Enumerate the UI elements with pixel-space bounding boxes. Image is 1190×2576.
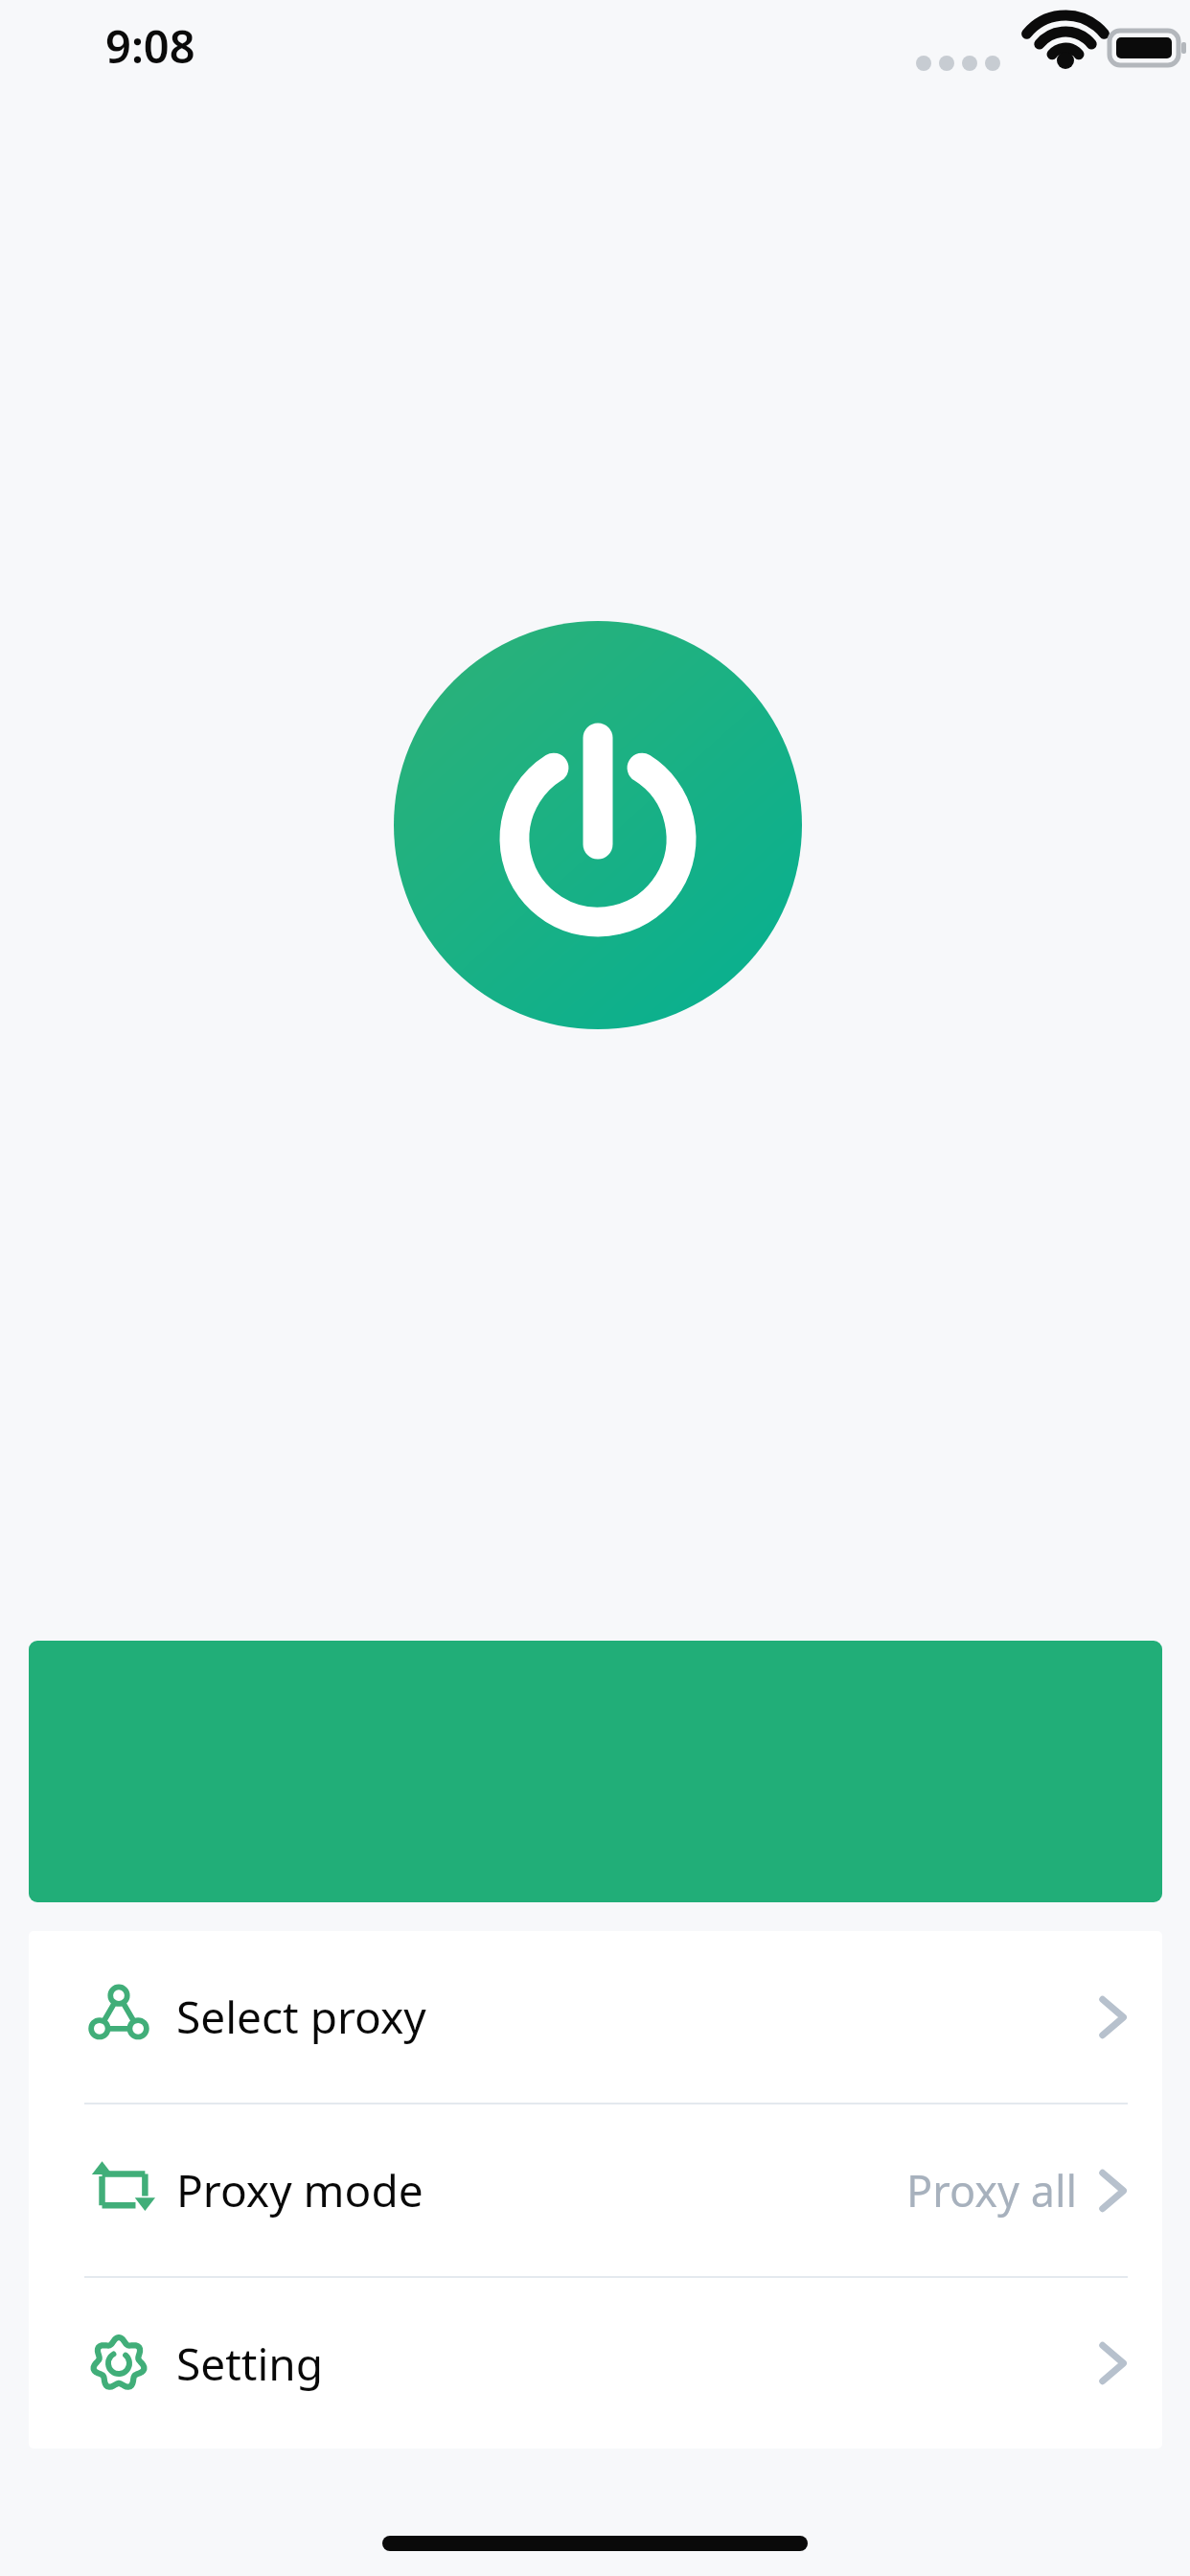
staticText: Proxy mode: [176, 2160, 423, 2220]
button[interactable]: Power, connect or disconnect: [394, 621, 802, 1029]
staticText: Proxy all: [906, 2161, 1078, 2219]
staticText: Setting: [176, 2334, 323, 2394]
staticText: Select proxy: [176, 1987, 426, 2047]
button[interactable]: Setting: [29, 2278, 1162, 2449]
button[interactable]: Select proxy: [29, 1931, 1162, 2103]
button[interactable]: Proxy mode: [29, 2104, 1162, 2276]
staticText: 9:08: [105, 15, 195, 77]
